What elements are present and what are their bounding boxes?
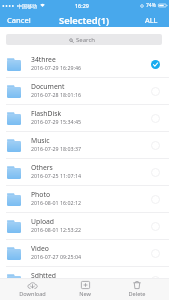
button[interactable]: FlashDisk xyxy=(0,105,169,132)
staticText: Others xyxy=(31,163,53,172)
staticText: 16:29 xyxy=(75,2,89,9)
button[interactable]: Document xyxy=(0,78,169,105)
staticText: 2016-07-27 09:25:04 xyxy=(31,253,82,260)
staticText: ALL xyxy=(145,15,158,25)
button[interactable]: 34three xyxy=(0,51,169,78)
staticText: Video xyxy=(31,244,49,253)
staticText: 2016-08-01 16:02:12 xyxy=(31,199,82,206)
staticText: Download xyxy=(19,290,46,298)
staticText: 2016-07-29 16:29:46 xyxy=(31,64,82,71)
staticText: 2016-07-27 09:25:04 xyxy=(31,280,82,287)
button[interactable]: Delete xyxy=(122,280,152,299)
staticText: Cancel xyxy=(7,15,31,25)
button[interactable]: Music xyxy=(0,132,169,159)
button[interactable]: Sdhtted xyxy=(0,267,169,294)
button[interactable]: New xyxy=(73,280,97,299)
button[interactable]: Search xyxy=(6,34,162,45)
button[interactable]: Photo xyxy=(0,186,169,213)
staticText: Upload xyxy=(31,217,55,226)
button[interactable]: Download xyxy=(13,281,52,299)
button[interactable]: Video xyxy=(0,240,169,267)
staticText: 中国移动 xyxy=(17,3,37,9)
staticText: Selected(1) xyxy=(59,14,110,27)
staticText: 2016-07-29 15:34:45 xyxy=(31,118,82,125)
staticText: Search xyxy=(76,36,95,44)
staticText: Delete xyxy=(128,290,146,298)
button[interactable]: Upload xyxy=(0,213,169,240)
staticText: FlashDisk xyxy=(31,109,62,118)
staticText: 2016-07-29 18:03:37 xyxy=(31,145,82,152)
staticText: Photo xyxy=(31,190,50,199)
staticText: 34three xyxy=(31,55,56,64)
staticText: 2016-07-28 18:01:16 xyxy=(31,91,82,98)
staticText: Document xyxy=(31,82,65,91)
staticText: Music xyxy=(31,136,50,145)
button[interactable]: ALL xyxy=(138,11,169,27)
staticText: 74% xyxy=(146,2,156,9)
staticText: Sdhtted xyxy=(31,271,57,280)
staticText: 2016-07-25 11:07:14 xyxy=(31,172,82,179)
staticText: New xyxy=(79,290,91,298)
button[interactable]: Others xyxy=(0,159,169,186)
button[interactable]: Cancel xyxy=(0,11,38,27)
staticText: 2016-08-01 12:53:22 xyxy=(31,226,82,233)
